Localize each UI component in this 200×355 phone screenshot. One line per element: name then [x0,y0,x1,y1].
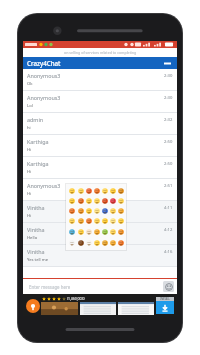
staticText: Hi [27,191,32,197]
button[interactable]: Emoji 20 [117,206,124,215]
staticText: Hi [27,213,32,219]
button[interactable]: Emoji 15 [77,206,84,215]
button[interactable]: Emoji [163,281,174,292]
button[interactable]: Emoji 13 [117,196,124,205]
staticText: hi [27,125,31,131]
button[interactable]: Emoji 14 [68,206,76,215]
staticText: Karthiga [27,138,49,145]
button[interactable]: Emoji 39 [101,238,108,248]
staticText: INSTALL [160,297,170,301]
button[interactable]: Enter message here [26,282,160,292]
staticText: Anonymous3 [27,182,61,189]
staticText: Karthiga [27,160,49,167]
staticText: admin [27,116,44,123]
button[interactable]: Emoji 3 [93,186,100,195]
button[interactable]: Emoji 32 [101,227,108,237]
staticText: 2:50 [164,161,173,167]
button[interactable]: Emoji 5 [109,186,116,195]
staticText: 4:12 [164,227,173,233]
staticText: 4:16 [164,249,173,255]
button[interactable]: Anonymous3 [23,91,177,113]
staticText: Enter message here [29,284,71,290]
staticText: (1,460,003) [67,296,85,301]
button[interactable]: Karthiga [23,157,177,179]
button[interactable]: Vinitha [23,223,177,245]
button[interactable]: Emoji 41 [117,238,124,248]
button[interactable]: Emoji 38 [93,238,100,248]
button[interactable]: Vinitha [23,245,177,267]
button[interactable]: Install [154,295,176,315]
staticText: 2:50 [164,139,173,145]
staticText: 2:30 [164,95,173,101]
button[interactable]: Emoji 27 [117,216,124,226]
button[interactable]: Anonymous3 [23,179,177,201]
button[interactable]: admin [23,113,177,135]
button[interactable]: Emoji 16 [85,206,92,215]
staticText: 2:51 [164,183,173,189]
button[interactable]: Emoji 29 [77,227,84,237]
button[interactable]: Emoji 22 [77,216,84,226]
button[interactable]: Emoji 7 [68,196,76,205]
staticText: 2:30 [164,73,173,79]
staticText: Vinitha [27,226,45,233]
button[interactable]: Emoji 19 [109,206,116,215]
button[interactable]: Emoji 40 [109,238,116,248]
staticText: Anonymous3 [27,94,61,101]
staticText: Lol [27,103,33,109]
button[interactable]: Emoji 8 [77,196,84,205]
staticText: Hello [27,235,38,241]
button[interactable]: Emoji 11 [101,196,108,205]
button[interactable]: Emoji 17 [93,206,100,215]
button[interactable]: Emoji 33 [109,227,116,237]
button[interactable]: Emoji 24 [93,216,100,226]
button[interactable]: Emoji 36 [77,238,84,248]
button[interactable]: Emoji 30 [85,227,92,237]
button[interactable]: Emoji 10 [93,196,100,205]
button[interactable]: Emoji 23 [85,216,92,226]
button[interactable]: Emoji 21 [68,216,76,226]
button[interactable]: Vinitha [23,201,177,223]
staticText: Anonymous3 [27,72,61,79]
button[interactable]: Karthiga [23,135,177,157]
button[interactable]: Emoji 1 [77,186,84,195]
button[interactable]: Emoji 34 [117,227,124,237]
button[interactable]: Emoji 35 [68,238,76,248]
button[interactable]: Emoji 12 [109,196,116,205]
staticText: Ok [27,81,33,87]
staticText: Hi [27,169,32,175]
button[interactable]: Emoji 6 [117,186,124,195]
button[interactable]: Crazy4Chat [23,57,177,69]
button[interactable]: (1,460,003) [23,294,177,316]
staticText: Crazy4Chat [27,59,61,67]
staticText: Vinitha [27,204,45,211]
button[interactable]: Emoji 37 [85,238,92,248]
button[interactable]: Emoji 4 [101,186,108,195]
button[interactable]: Emoji 25 [101,216,108,226]
button[interactable]: Emoji 9 [85,196,92,205]
button[interactable]: Emoji 2 [85,186,92,195]
button[interactable]: Minimize [161,57,173,69]
button[interactable]: Emoji 26 [109,216,116,226]
staticText: 2:32 [164,117,173,123]
staticText: 4:11 [164,205,173,211]
button[interactable]: Emoji 0 [68,186,76,195]
staticText: Hi [27,147,32,153]
staticText: on selling of services related to comple… [64,50,137,55]
button[interactable]: Emoji 28 [68,227,76,237]
staticText: Vinitha [27,248,45,255]
staticText: Yes tell me [27,257,49,263]
button[interactable]: Anonymous3 [23,69,177,91]
button[interactable]: Emoji 31 [93,227,100,237]
button[interactable]: Emoji 18 [101,206,108,215]
